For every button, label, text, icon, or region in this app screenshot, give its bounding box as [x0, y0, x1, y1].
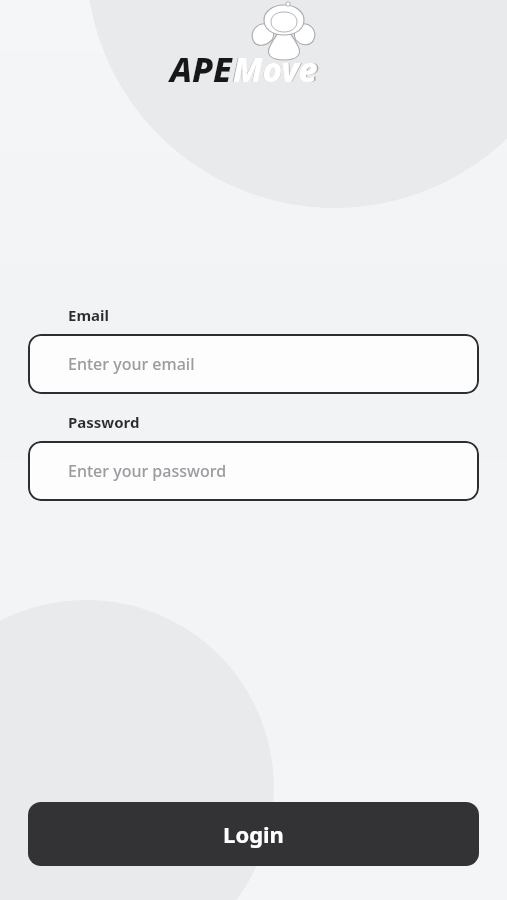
- staticText: Email: [68, 305, 109, 325]
- staticText: Enter your email: [68, 353, 195, 375]
- staticText: Move: [232, 46, 320, 92]
- staticText: APE: [170, 46, 232, 92]
- staticText: Move: [233, 47, 318, 92]
- staticText: Enter your password: [68, 460, 227, 482]
- staticText: Password: [68, 412, 140, 432]
- staticText: Login: [223, 819, 284, 849]
- button[interactable]: Enter your email: [28, 334, 479, 394]
- button[interactable]: Login: [28, 802, 479, 866]
- button[interactable]: Enter your password: [28, 441, 479, 501]
